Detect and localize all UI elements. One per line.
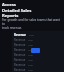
staticText: Revenue bbox=[14, 58, 26, 62]
staticText: Revenue bbox=[14, 33, 27, 37]
staticText: 12% bbox=[28, 53, 33, 56]
staticText: 12% bbox=[28, 48, 33, 51]
staticText: 12% bbox=[28, 43, 33, 46]
staticText: Access Detailed Sales Reports bbox=[2, 2, 32, 18]
staticText: 12% bbox=[28, 63, 33, 66]
staticText: Revenue bbox=[14, 68, 26, 72]
staticText: 12% bbox=[28, 38, 33, 41]
button[interactable]: Get started bbox=[31, 48, 40, 53]
staticText: Revenue bbox=[14, 53, 26, 57]
staticText: 12% bbox=[28, 68, 33, 71]
staticText: For growth and for sales teams that want… bbox=[2, 18, 62, 30]
staticText: 12% bbox=[28, 58, 33, 61]
staticText: Revenue bbox=[14, 63, 26, 67]
staticText: Revenue bbox=[14, 48, 26, 52]
button[interactable]: Revenue bbox=[12, 31, 64, 72]
staticText: 12% bbox=[29, 33, 34, 36]
staticText: Revenue bbox=[14, 38, 26, 42]
staticText: Revenue bbox=[14, 43, 26, 47]
